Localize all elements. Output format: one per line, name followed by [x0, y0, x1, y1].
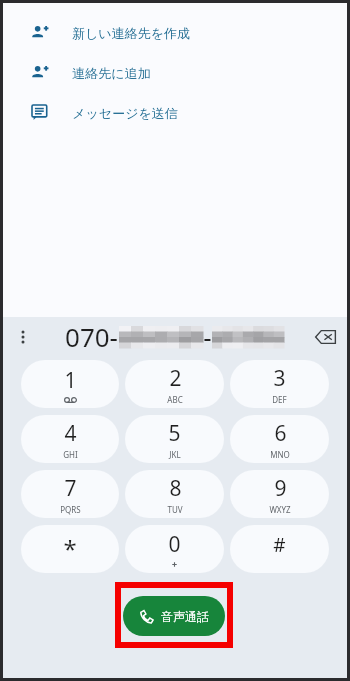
button[interactable]: 0: [125, 525, 224, 573]
staticText: ABC: [167, 394, 183, 405]
staticText: 新しい連絡先を作成: [72, 25, 190, 41]
button[interactable]: 7: [21, 470, 119, 518]
staticText: 4: [64, 419, 77, 448]
button[interactable]: 5: [125, 415, 224, 463]
staticText: 音声通話: [161, 609, 209, 624]
staticText: JKL: [169, 449, 181, 460]
button[interactable]: #: [230, 525, 329, 573]
button[interactable]: 4: [21, 415, 119, 463]
staticText: 6: [274, 419, 287, 448]
button[interactable]: *: [21, 525, 119, 573]
staticText: 3: [273, 364, 286, 393]
staticText: *: [63, 532, 77, 558]
staticText: TUV: [167, 504, 183, 515]
staticText: 2: [169, 364, 182, 393]
staticText: -: [203, 319, 212, 354]
button[interactable]: 3: [230, 360, 329, 408]
button[interactable]: 9: [230, 470, 329, 518]
staticText: 070-: [65, 319, 118, 354]
staticText: DEF: [272, 394, 287, 405]
staticText: 0: [168, 530, 181, 559]
staticText: 5: [168, 419, 181, 448]
button[interactable]: 8: [125, 470, 224, 518]
button[interactable]: 1: [21, 360, 119, 408]
staticText: #: [273, 532, 286, 558]
button[interactable]: 連絡先に追加: [3, 53, 347, 93]
staticText: 9: [274, 474, 287, 503]
button[interactable]: 6: [230, 415, 329, 463]
staticText: 連絡先に追加: [72, 65, 151, 81]
button[interactable]: 音声通話: [123, 596, 225, 636]
staticText: 8: [169, 474, 182, 503]
button[interactable]: メッセージを送信: [3, 93, 347, 133]
button[interactable]: 2: [125, 360, 224, 408]
button[interactable]: More options: [3, 317, 43, 356]
staticText: WXYZ: [269, 504, 291, 515]
staticText: メッセージを送信: [72, 105, 178, 121]
button[interactable]: 新しい連絡先を作成: [3, 13, 347, 53]
staticText: MNO: [270, 449, 290, 460]
staticText: 7: [64, 474, 77, 503]
staticText: GHI: [63, 449, 78, 460]
staticText: PQRS: [60, 504, 81, 515]
button[interactable]: Backspace: [303, 317, 347, 356]
staticText: 1: [64, 366, 77, 395]
